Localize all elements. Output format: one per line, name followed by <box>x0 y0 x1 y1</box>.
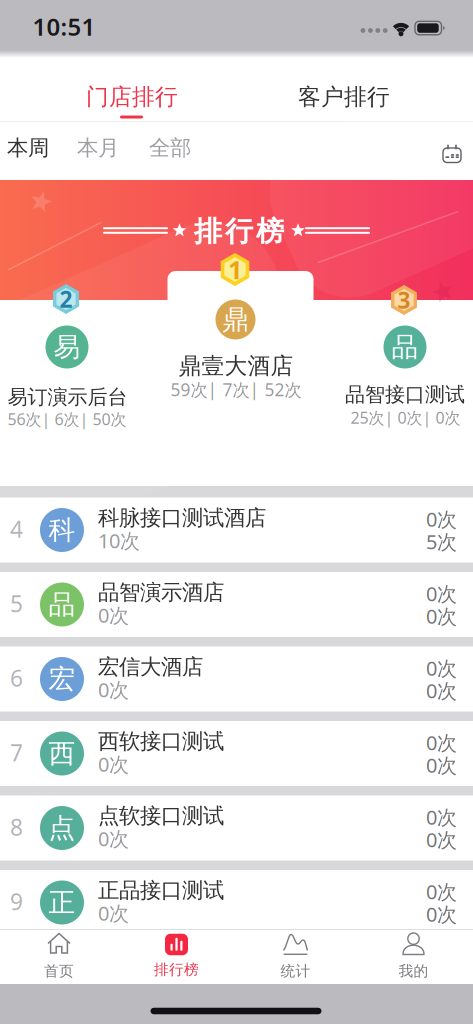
staticText: 2 <box>59 284 72 314</box>
staticText: 宏 <box>48 663 75 695</box>
button[interactable]: 本月 <box>70 128 126 168</box>
staticText: 鼎 <box>222 303 249 336</box>
staticText: 4 <box>10 514 23 544</box>
button[interactable]: 首页 <box>9 930 109 982</box>
button[interactable]: 5 <box>0 572 473 637</box>
staticText: 门店排行 <box>86 83 178 111</box>
staticText: 59次| 7次| 52次 <box>170 378 301 401</box>
button[interactable]: 全部 <box>142 128 198 168</box>
staticText: 56次| 6次| 50次 <box>7 408 126 430</box>
staticText: 3 <box>397 285 410 315</box>
staticText: 1 <box>228 253 242 286</box>
button[interactable] <box>434 135 464 165</box>
staticText: 科 <box>48 514 75 546</box>
staticText: 0次 <box>98 602 129 628</box>
staticText: 5 <box>10 588 23 618</box>
button[interactable]: 1 <box>161 251 311 401</box>
button[interactable]: 统计 <box>245 930 345 982</box>
staticText: 客户排行 <box>298 83 390 111</box>
staticText: 0次 <box>426 878 457 905</box>
staticText: 点软接口测试 <box>98 803 224 829</box>
staticText: 0次 <box>98 900 129 926</box>
staticText: 首页 <box>44 962 74 980</box>
staticText: 点 <box>48 812 75 844</box>
staticText: 0次 <box>426 901 457 927</box>
button[interactable]: 2 <box>0 281 137 431</box>
staticText: 0次 <box>426 752 457 778</box>
button[interactable]: 7 <box>0 721 473 786</box>
staticText: 8 <box>10 812 23 842</box>
button[interactable]: 客户排行 <box>274 75 414 119</box>
staticText: 10次 <box>98 527 140 554</box>
staticText: 我的 <box>398 962 428 980</box>
staticText: 9 <box>10 886 23 916</box>
staticText: 品智演示酒店 <box>98 579 224 606</box>
staticText: 易 <box>53 331 80 363</box>
button[interactable]: 6 <box>0 646 473 711</box>
staticText: 品 <box>48 588 75 621</box>
staticText: 全部 <box>149 135 191 161</box>
button[interactable]: 门店排行 <box>62 75 202 119</box>
staticText: 0次 <box>426 603 457 629</box>
staticText: 易订演示后台 <box>7 385 127 409</box>
staticText: 统计 <box>280 962 310 980</box>
staticText: 排行榜 <box>154 960 199 978</box>
button[interactable]: 我的 <box>363 930 463 982</box>
staticText: 0次 <box>426 804 457 830</box>
staticText: 0次 <box>98 751 129 777</box>
button[interactable]: 3 <box>335 281 473 431</box>
staticText: 正品接口测试 <box>98 877 224 904</box>
staticText: 0次 <box>426 729 457 756</box>
staticText: 5次 <box>426 528 457 555</box>
button[interactable]: 4 <box>0 497 473 562</box>
button[interactable]: 8 <box>0 795 473 860</box>
staticText: 0次 <box>426 677 457 704</box>
staticText: 西软接口测试 <box>98 728 224 755</box>
staticText: 排行榜 <box>194 214 284 249</box>
staticText: 本周 <box>7 135 49 161</box>
staticText: 本月 <box>77 135 119 161</box>
staticText: 0次 <box>98 676 129 703</box>
staticText: 品 <box>391 331 418 363</box>
staticText: 6 <box>10 663 23 693</box>
staticText: 10:51 <box>32 11 95 42</box>
staticText: 7 <box>10 737 23 767</box>
button[interactable]: 9 <box>0 870 473 935</box>
staticText: 正 <box>48 886 75 919</box>
staticText: 科脉接口测试酒店 <box>98 505 266 531</box>
staticText: 西 <box>48 737 75 770</box>
staticText: 宏信大酒店 <box>98 654 203 680</box>
staticText: 0次 <box>426 506 457 532</box>
staticText: 25次| 0次| 0次 <box>350 407 460 428</box>
button[interactable]: 排行榜 <box>126 930 226 982</box>
staticText: 品智接口测试 <box>345 382 465 407</box>
staticText: 鼎壹大酒店 <box>178 352 293 380</box>
staticText: 0次 <box>426 655 457 681</box>
staticText: 0次 <box>426 826 457 853</box>
button[interactable]: 本周 <box>0 128 56 168</box>
staticText: 0次 <box>426 580 457 607</box>
staticText: 0次 <box>98 825 129 852</box>
